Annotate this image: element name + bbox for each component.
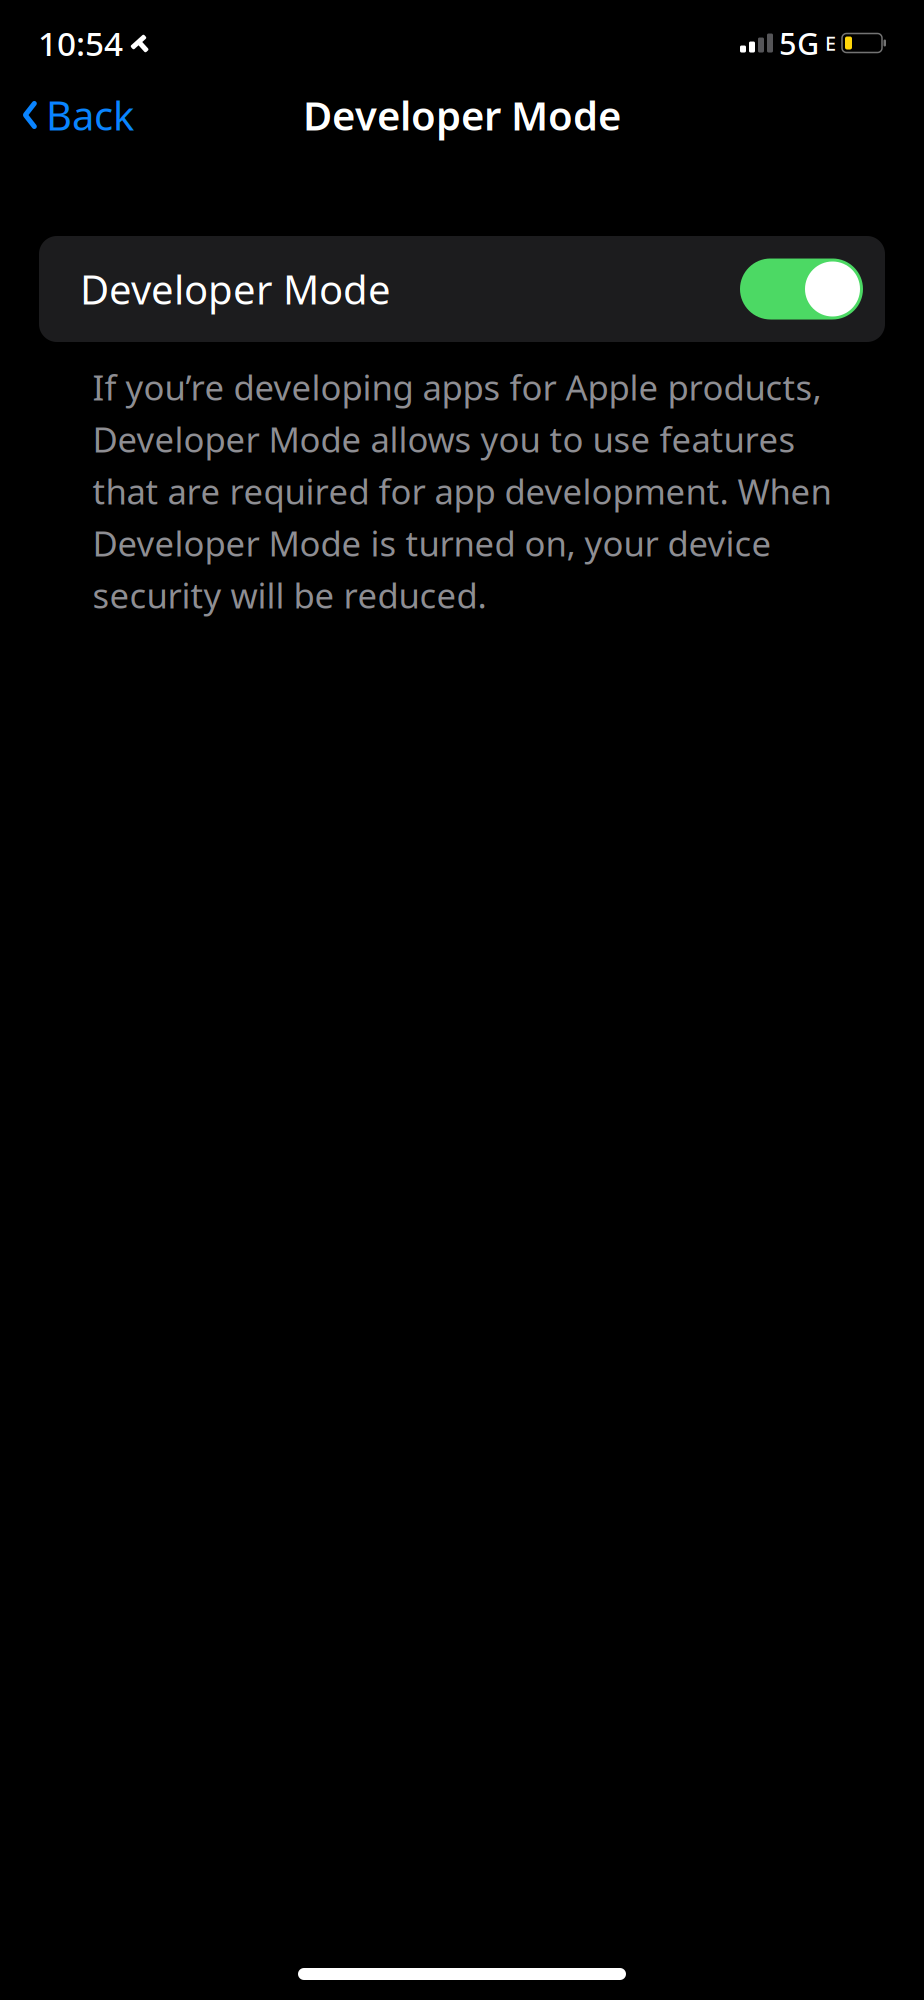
staticText: Back (46, 88, 134, 141)
staticText: Developer Mode (303, 88, 621, 141)
staticText: E (825, 30, 836, 56)
staticText: Developer Mode (80, 262, 391, 315)
staticText: 5G (779, 23, 819, 63)
button[interactable]: Developer Mode (39, 236, 885, 342)
staticText: 10:54 (38, 21, 123, 65)
button[interactable]: Back (12, 80, 144, 149)
staticText: If you’re developing apps for Apple prod… (92, 364, 831, 618)
